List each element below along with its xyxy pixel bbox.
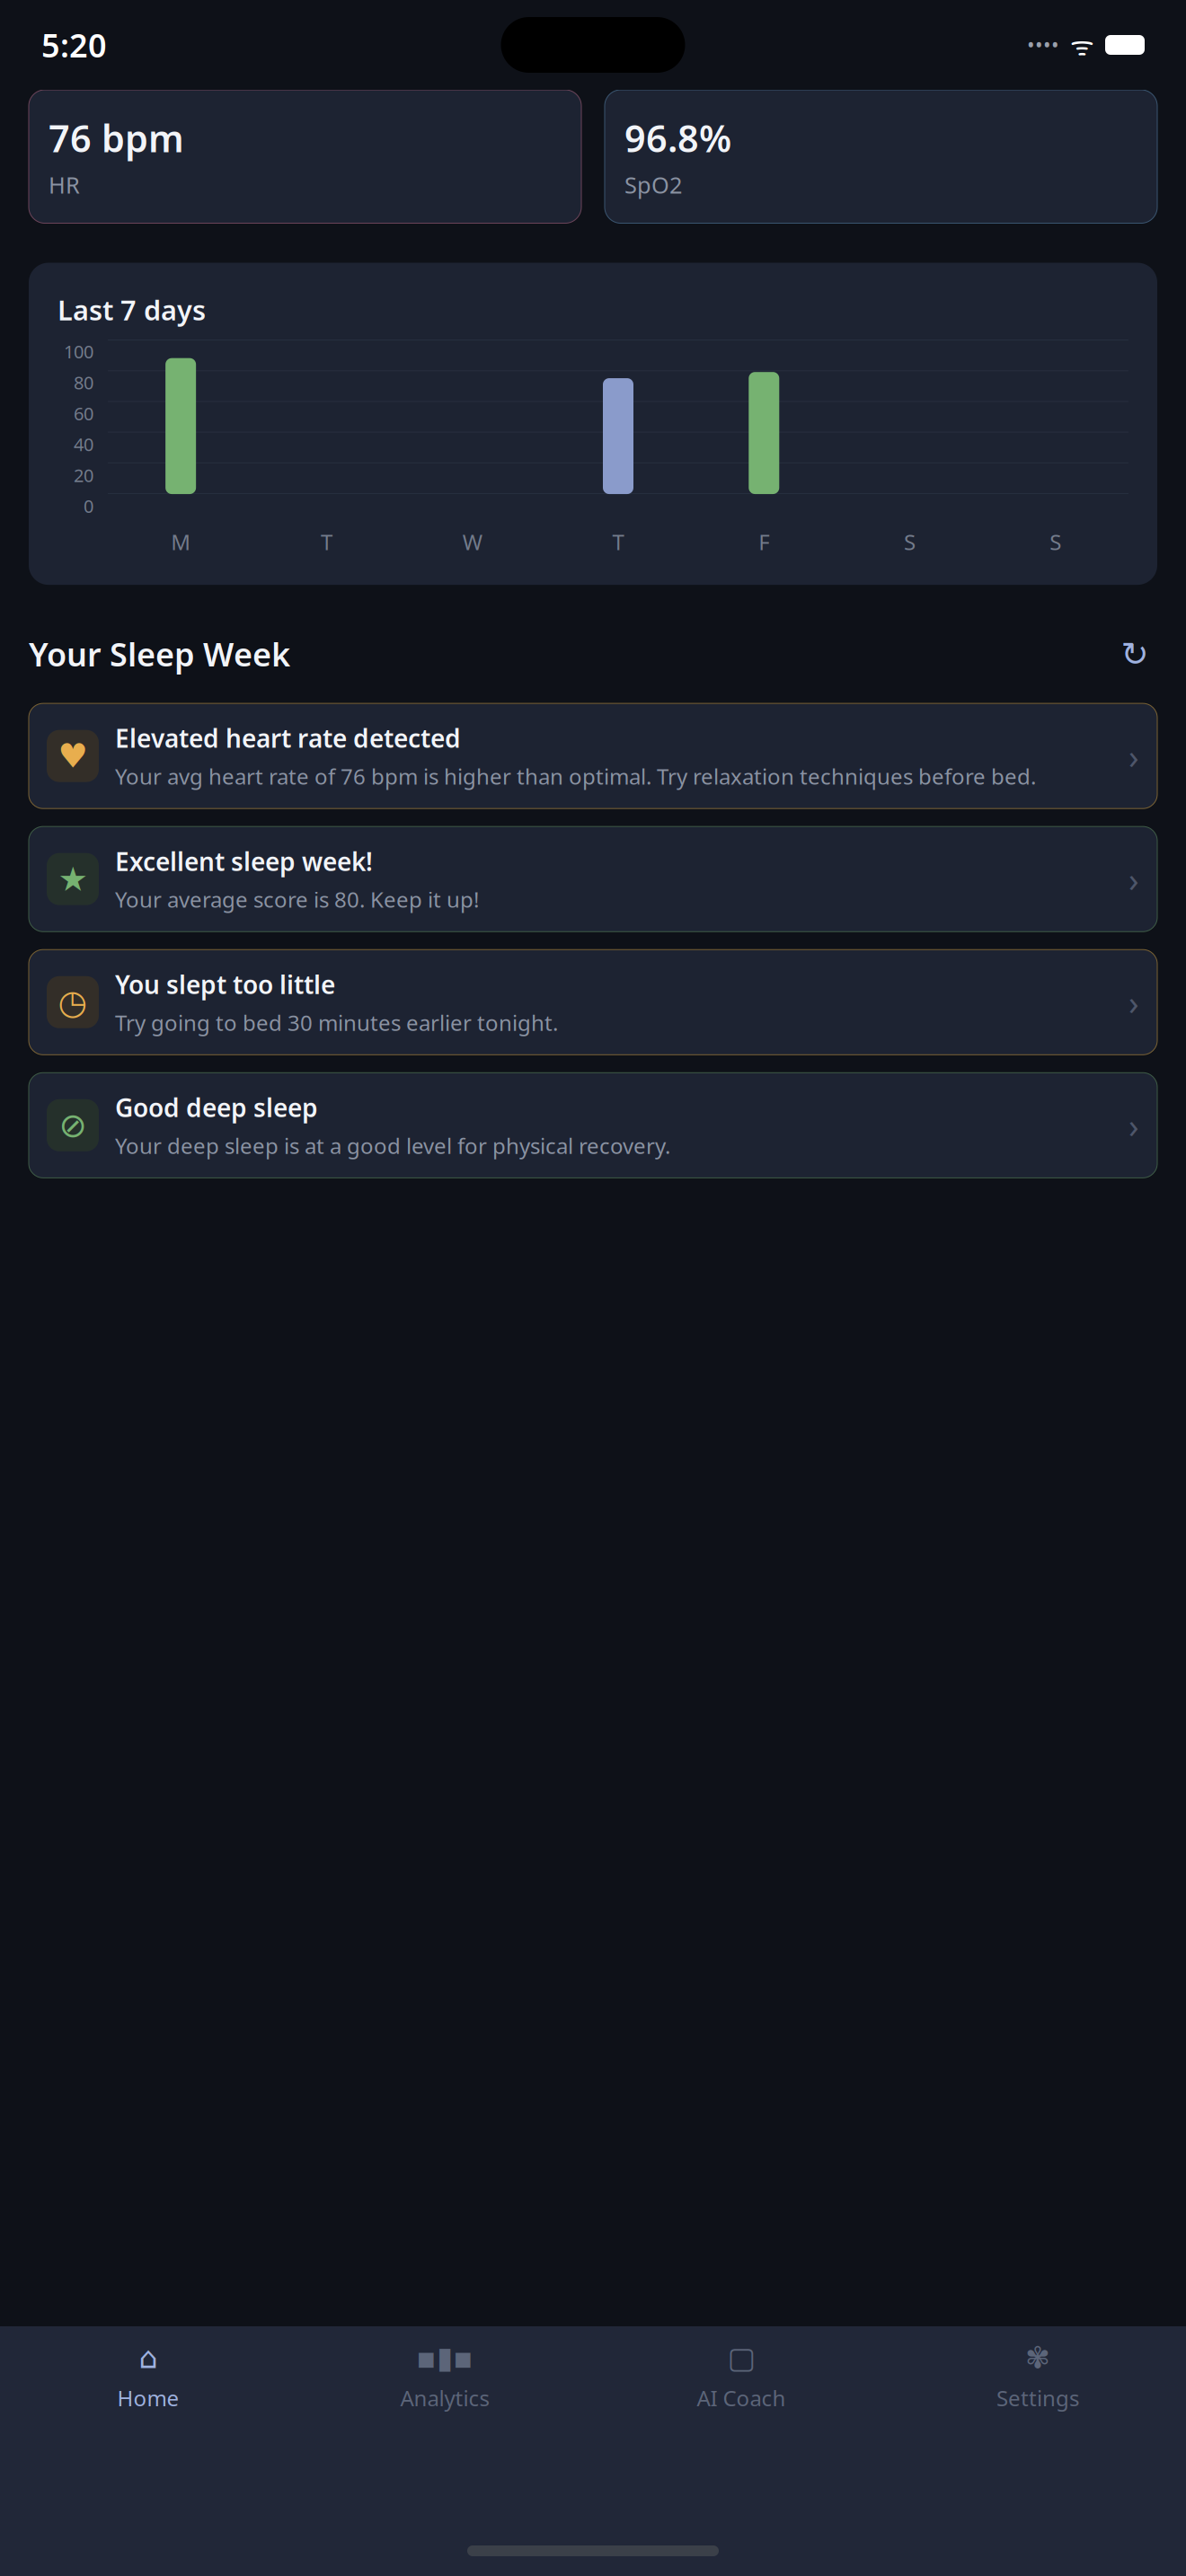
button[interactable]: ★ (29, 827, 1157, 932)
staticText: ✾ (1025, 2341, 1050, 2375)
staticText: Home (117, 2384, 179, 2412)
staticText: 5:20 (41, 23, 107, 66)
staticText: 80 (74, 371, 93, 394)
button[interactable]: ◷ (29, 950, 1157, 1055)
staticText: 76 bpm (49, 113, 184, 162)
staticText: HR (49, 170, 80, 200)
staticText: 96.8% (624, 113, 731, 162)
button[interactable]: ⌂ (0, 2326, 296, 2412)
staticText: Analytics (400, 2384, 489, 2412)
staticText: Last 7 days (58, 291, 206, 328)
staticText: Elevated heart rate detected (115, 721, 461, 755)
staticText: Settings (996, 2384, 1079, 2412)
staticText: ᯤ (1070, 27, 1094, 62)
button[interactable]: ♥ (29, 703, 1157, 809)
staticText: W (462, 528, 482, 556)
staticText: › (1128, 980, 1139, 1024)
staticText: ↻ (1121, 635, 1149, 673)
staticText: › (1128, 1103, 1139, 1148)
staticText: S (904, 528, 916, 556)
staticText: 60 (74, 401, 93, 425)
staticText: You slept too little (115, 968, 335, 1001)
staticText: SpO2 (624, 170, 682, 200)
staticText: •••• (1027, 31, 1059, 58)
button[interactable]: Refresh (1112, 632, 1157, 676)
staticText: F (759, 528, 769, 556)
staticText: T (612, 528, 624, 556)
staticText: › (1128, 857, 1139, 901)
staticText: Good deep sleep (115, 1091, 318, 1124)
staticText: Your deep sleep is at a good level for p… (115, 1131, 670, 1160)
staticText: ▢ (727, 2341, 755, 2375)
staticText: Try going to bed 30 minutes earlier toni… (115, 1008, 558, 1037)
staticText: ⊘ (59, 1106, 87, 1144)
staticText: ♥ (58, 737, 88, 775)
staticText: Your Sleep Week (29, 633, 290, 675)
staticText: AI Coach (697, 2384, 786, 2412)
button[interactable]: 76 bpm (29, 90, 581, 223)
staticText: ⌂ (139, 2341, 158, 2375)
staticText: Excellent sleep week! (115, 844, 373, 878)
staticText: 100 (64, 340, 93, 363)
staticText: ◷ (58, 983, 88, 1021)
button[interactable]: ▢ (593, 2326, 889, 2412)
staticText: ▪▮▪ (416, 2341, 474, 2375)
staticText: M (171, 528, 191, 556)
staticText: S (1050, 528, 1061, 556)
staticText: › (1128, 734, 1139, 778)
button[interactable]: 96.8% (605, 90, 1157, 223)
staticText: Your avg heart rate of 76 bpm is higher … (115, 762, 1036, 791)
button[interactable]: ✾ (889, 2326, 1186, 2412)
button[interactable]: ▪▮▪ (296, 2326, 593, 2412)
staticText: 40 (74, 432, 93, 456)
staticText: Your average score is 80. Keep it up! (115, 885, 479, 914)
staticText: ★ (58, 860, 88, 898)
staticText: 0 (84, 494, 93, 518)
staticText: T (321, 528, 332, 556)
staticText: 20 (74, 463, 93, 487)
button[interactable]: ⊘ (29, 1073, 1157, 1178)
